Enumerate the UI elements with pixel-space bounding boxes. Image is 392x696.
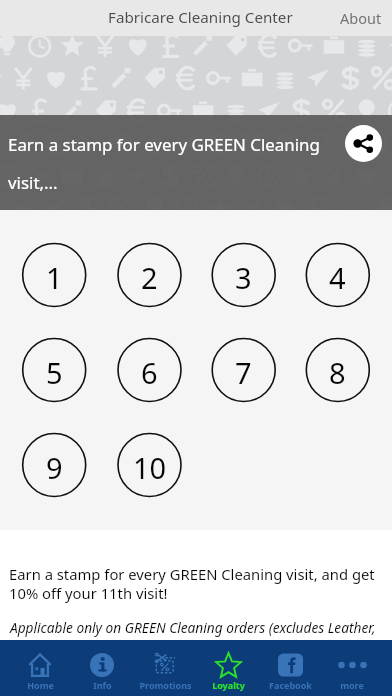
staticText: 8 (329, 353, 346, 392)
button[interactable]: 2 (118, 246, 181, 309)
staticText: Home (27, 679, 54, 691)
staticText: Loyalty (212, 679, 245, 691)
button[interactable]: Home (9, 640, 71, 696)
staticText: 2 (141, 258, 158, 297)
button[interactable]: 5 (23, 341, 86, 404)
staticText: 9 (46, 448, 63, 487)
button[interactable]: 1 (23, 246, 86, 309)
button[interactable]: 7 (212, 341, 275, 404)
staticText: Info (93, 679, 112, 691)
staticText: Applicable only on GREEN Cleaning orders… (10, 618, 376, 637)
staticText: 10 (133, 448, 167, 487)
staticText: 5 (46, 353, 63, 392)
staticText: Earn a stamp for every GREEN Cleaning (8, 133, 320, 156)
staticText: 7 (235, 353, 252, 392)
button[interactable]: 3 (212, 246, 275, 309)
button[interactable]: 6 (118, 341, 181, 404)
staticText: About (340, 8, 382, 28)
staticText: Earn a stamp for every GREEN Cleaning vi… (9, 564, 383, 603)
button[interactable]: Facebook (259, 640, 321, 696)
button[interactable]: 10 (118, 436, 181, 499)
staticText: Facebook (269, 679, 312, 691)
button[interactable]: more (321, 640, 383, 696)
button[interactable]: Share (345, 125, 382, 162)
staticText: Promotions (139, 679, 192, 691)
staticText: Fabricare Cleaning Center (108, 7, 293, 28)
staticText: more (340, 679, 364, 691)
button[interactable]: 4 (306, 246, 369, 309)
button[interactable]: 8 (306, 341, 369, 404)
button[interactable]: Info (71, 640, 133, 696)
button[interactable]: 9 (23, 436, 86, 499)
staticText: 6 (141, 353, 158, 392)
staticText: 4 (329, 258, 346, 297)
staticText: 3 (235, 258, 252, 297)
button[interactable]: Loyalty (197, 640, 259, 696)
button[interactable]: About (328, 4, 392, 32)
staticText: 1 (46, 258, 63, 297)
staticText: visit,... (8, 171, 58, 194)
button[interactable]: Promotions (134, 640, 196, 696)
